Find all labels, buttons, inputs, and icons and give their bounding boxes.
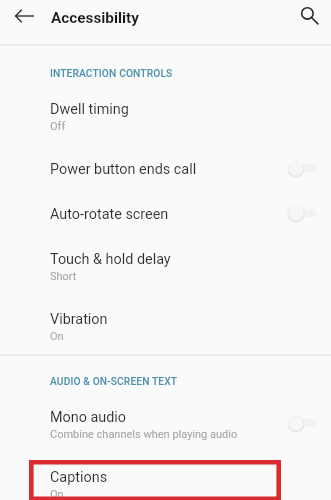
- button[interactable]: Search: [291, 0, 331, 37]
- staticText: Auto-rotate screen: [50, 206, 169, 223]
- staticText: On: [50, 488, 64, 500]
- staticText: Captions: [50, 469, 108, 486]
- staticText: Power button ends call: [50, 161, 197, 178]
- staticText: Mono audio: [50, 409, 127, 426]
- button[interactable]: Auto-rotate screen: [0, 191, 331, 236]
- button[interactable]: Toggle Auto-rotate screen: [288, 203, 317, 223]
- button[interactable]: Dwell timing: [0, 86, 331, 146]
- staticText: Short: [50, 270, 77, 283]
- button[interactable]: Vibration: [0, 296, 331, 356]
- staticText: Touch & hold delay: [50, 251, 171, 268]
- button[interactable]: Captions: [0, 454, 331, 500]
- staticText: Dwell timing: [50, 101, 129, 118]
- staticText: Combine channels when playing audio: [50, 428, 238, 441]
- staticText: Accessibility: [51, 9, 139, 27]
- staticText: Vibration: [50, 311, 108, 328]
- button[interactable]: Touch & hold delay: [0, 236, 331, 296]
- staticText: INTERACTION CONTROLS: [50, 68, 173, 80]
- button[interactable]: Toggle Power button ends call: [288, 158, 317, 178]
- staticText: AUDIO & ON-SCREEN TEXT: [50, 376, 178, 388]
- staticText: Off: [50, 120, 66, 133]
- button[interactable]: Mono audio: [0, 394, 331, 454]
- button[interactable]: Toggle Mono audio: [288, 413, 317, 433]
- button[interactable]: Navigate up: [4, 0, 44, 36]
- staticText: On: [50, 330, 64, 343]
- button[interactable]: Power button ends call: [0, 146, 331, 191]
